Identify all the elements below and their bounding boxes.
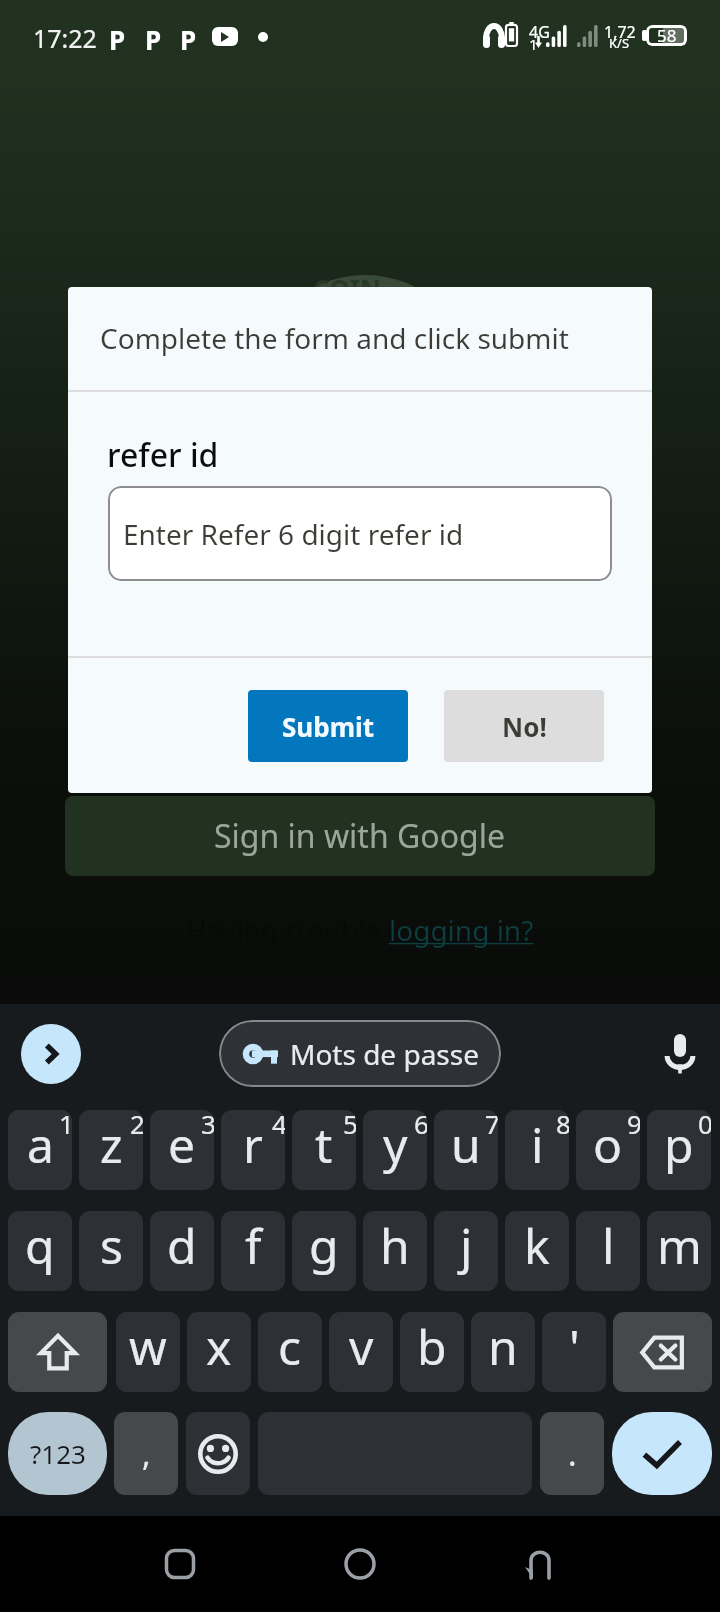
staticText: 5 (343, 1110, 356, 1141)
staticText: , (142, 1432, 151, 1476)
staticText: . (568, 1432, 577, 1476)
button[interactable]: u (434, 1110, 498, 1190)
staticText: K/S (609, 34, 630, 52)
staticText: j (460, 1213, 473, 1278)
staticText: ?123 (30, 1436, 86, 1471)
staticText: Complete the form and click submit (100, 319, 569, 357)
button[interactable]: Back (510, 1534, 570, 1594)
staticText: t (315, 1112, 333, 1177)
staticText: u (451, 1112, 481, 1177)
button[interactable]: Emoji (186, 1412, 250, 1495)
button[interactable]: Recent apps (150, 1534, 210, 1594)
button[interactable]: Enter Refer 6 digit refer id (108, 486, 612, 581)
staticText: Enter Refer 6 digit refer id (123, 515, 464, 553)
button[interactable]: h (363, 1211, 427, 1291)
staticText: Sign in with Google (214, 814, 506, 858)
button[interactable]: Sign in with Google (65, 796, 655, 876)
staticText: 4G (529, 21, 550, 43)
button[interactable]: o (576, 1110, 640, 1190)
staticText: c (278, 1314, 302, 1379)
button[interactable]: p (647, 1110, 711, 1190)
button[interactable]: No! (444, 690, 604, 762)
button[interactable]: s (79, 1211, 143, 1291)
button[interactable]: g (292, 1211, 356, 1291)
staticText: 3 (201, 1110, 214, 1141)
staticText: P (109, 22, 126, 57)
staticText: 9 (627, 1110, 640, 1141)
staticText: v (349, 1314, 374, 1379)
staticText: f (245, 1213, 262, 1278)
button[interactable]: n (471, 1312, 535, 1392)
button[interactable]: w (116, 1312, 180, 1392)
staticText: d (167, 1213, 197, 1278)
button[interactable]: d (150, 1211, 214, 1291)
button[interactable]: ' (542, 1312, 606, 1392)
staticText: Submit (282, 709, 375, 744)
button[interactable]: Backspace (613, 1312, 712, 1392)
button[interactable]: . (540, 1412, 604, 1495)
button[interactable]: f (221, 1211, 285, 1291)
button[interactable]: k (505, 1211, 569, 1291)
staticText: No! (502, 709, 547, 744)
button[interactable]: Expand suggestions (21, 1024, 81, 1084)
staticText: b (417, 1314, 447, 1379)
staticText: 4 (272, 1110, 285, 1141)
staticText: g (309, 1213, 339, 1278)
staticText: P (145, 22, 162, 57)
staticText: refer id (107, 433, 219, 477)
button[interactable]: y (363, 1110, 427, 1190)
button[interactable]: r (221, 1110, 285, 1190)
button[interactable]: t (292, 1110, 356, 1190)
button[interactable]: q (8, 1211, 72, 1291)
button[interactable]: , (114, 1412, 178, 1495)
staticText: 8 (556, 1110, 569, 1141)
staticText: 17:22 (33, 21, 97, 55)
button[interactable]: j (434, 1211, 498, 1291)
staticText: o (593, 1112, 623, 1177)
button[interactable]: l (576, 1211, 640, 1291)
button[interactable]: i (505, 1110, 569, 1190)
staticText: w (129, 1314, 167, 1379)
staticText: s (100, 1213, 123, 1278)
staticText: x (206, 1314, 232, 1379)
staticText: ' (569, 1314, 580, 1379)
staticText: z (100, 1112, 123, 1177)
staticText: e (168, 1112, 196, 1177)
button[interactable]: v (329, 1312, 393, 1392)
button[interactable]: ?123 (8, 1412, 107, 1495)
button[interactable]: Submit (248, 690, 408, 762)
staticText: y (383, 1112, 408, 1177)
staticText: k (524, 1213, 550, 1278)
button[interactable]: Shift (8, 1312, 107, 1392)
button[interactable]: Mots de passe (219, 1020, 501, 1087)
button[interactable]: x (187, 1312, 251, 1392)
staticText: h (380, 1213, 410, 1278)
staticText: 1,72 (604, 21, 636, 43)
staticText: 0 (698, 1110, 711, 1141)
staticText: m (657, 1213, 702, 1278)
button[interactable]: b (400, 1312, 464, 1392)
staticText: r (243, 1112, 263, 1177)
staticText: 7 (485, 1110, 498, 1141)
button[interactable]: logging in? (389, 911, 534, 949)
button[interactable]: e (150, 1110, 214, 1190)
staticText: a (27, 1112, 54, 1177)
staticText: P (180, 22, 197, 57)
staticText: l (602, 1213, 615, 1278)
staticText: n (488, 1314, 518, 1379)
staticText: q (25, 1213, 55, 1278)
staticText: 1 (529, 34, 538, 54)
staticText: Mots de passe (290, 1035, 479, 1073)
button[interactable]: a (8, 1110, 72, 1190)
button[interactable]: Voice input (648, 1023, 712, 1087)
button[interactable]: z (79, 1110, 143, 1190)
staticText: i (531, 1112, 544, 1177)
staticText: COIN (313, 271, 381, 306)
button[interactable]: Home (330, 1534, 390, 1594)
staticText: 58 (657, 25, 677, 45)
button[interactable]: c (258, 1312, 322, 1392)
button[interactable]: Enter (612, 1412, 712, 1495)
button[interactable]: m (647, 1211, 711, 1291)
